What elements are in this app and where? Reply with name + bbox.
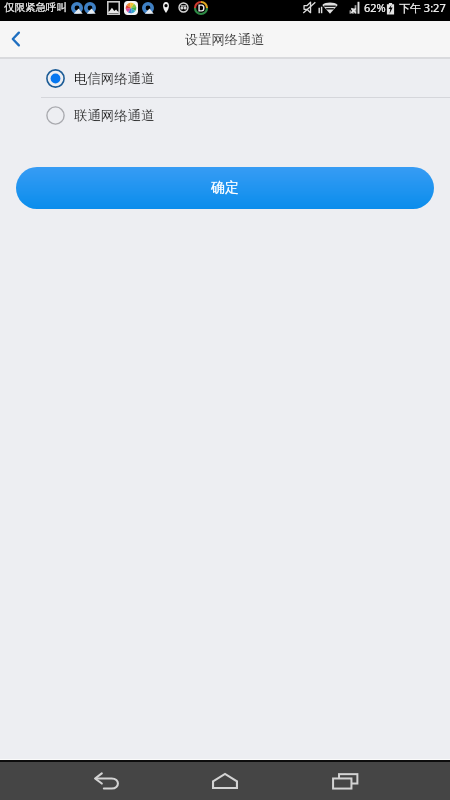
button[interactable]: 电信网络通道 <box>0 60 450 96</box>
button[interactable]: Recents <box>308 762 378 800</box>
button[interactable]: 联通网络通道 <box>0 97 450 133</box>
button[interactable]: 确定 <box>16 167 434 209</box>
staticText: 联通网络通道 <box>74 107 155 124</box>
button[interactable]: Back <box>0 23 32 55</box>
staticText: 下午 3:27 <box>399 0 446 15</box>
staticText: 62% <box>364 0 386 15</box>
staticText: 确定 <box>211 179 239 197</box>
staticText: 仅限紧急呼叫 <box>4 1 67 14</box>
button[interactable]: Back <box>72 762 142 800</box>
staticText: 电信网络通道 <box>74 70 155 87</box>
button[interactable]: Home <box>190 762 260 800</box>
staticText: 设置网络通道 <box>185 31 265 48</box>
